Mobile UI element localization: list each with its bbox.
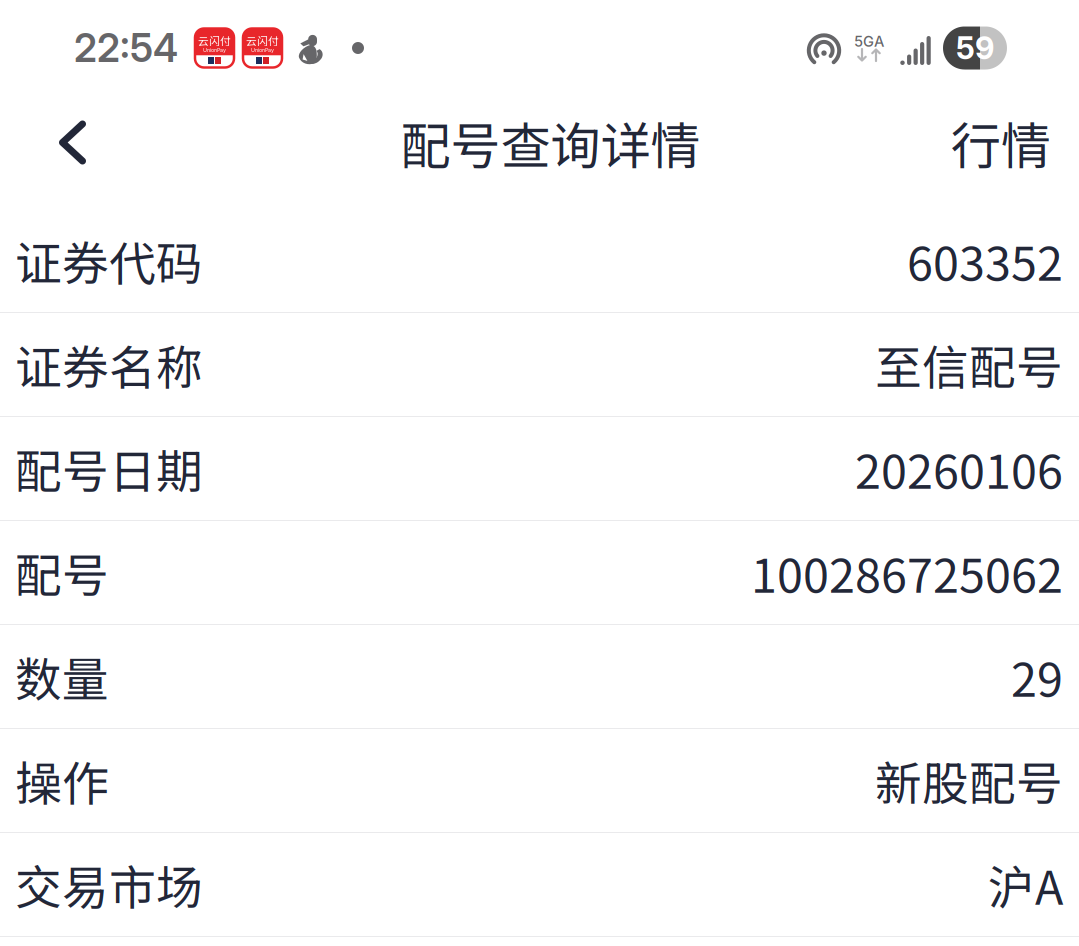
button[interactable]: 配号日期 <box>0 417 1079 521</box>
button[interactable]: 证券代码 <box>0 209 1079 313</box>
staticText: 云闪付 <box>246 33 279 48</box>
staticText: 操作 <box>15 747 109 814</box>
staticText: 沪A <box>988 851 1063 918</box>
button[interactable]: 行情 <box>921 92 1079 213</box>
button[interactable]: Back <box>0 106 120 198</box>
staticText: 5GA <box>854 33 884 50</box>
staticText: 29 <box>1011 643 1063 710</box>
button[interactable]: 交易市场 <box>0 833 1079 937</box>
staticText: 配号查询详情 <box>400 106 700 179</box>
staticText: 新股配号 <box>875 747 1063 814</box>
staticText: 证券代码 <box>15 227 203 294</box>
staticText: 59 <box>956 29 994 66</box>
staticText: 配号日期 <box>15 435 203 502</box>
staticText: 行情 <box>951 106 1051 179</box>
staticText: 至信配号 <box>875 331 1063 398</box>
staticText: UnionPay <box>251 47 274 53</box>
staticText: 603352 <box>907 227 1063 294</box>
button[interactable]: 证券名称 <box>0 313 1079 417</box>
staticText: UnionPay <box>203 47 226 53</box>
staticText: 100286725062 <box>751 539 1063 606</box>
button[interactable]: 数量 <box>0 625 1079 729</box>
staticText: 22:54 <box>74 25 178 71</box>
staticText: 证券名称 <box>15 331 203 398</box>
staticText: 云闪付 <box>198 33 231 48</box>
button[interactable]: 操作 <box>0 729 1079 833</box>
staticText: 配号 <box>15 539 109 606</box>
button[interactable]: 配号 <box>0 521 1079 625</box>
staticText: 交易市场 <box>15 851 203 918</box>
staticText: 数量 <box>15 643 109 710</box>
staticText: 20260106 <box>855 435 1063 502</box>
